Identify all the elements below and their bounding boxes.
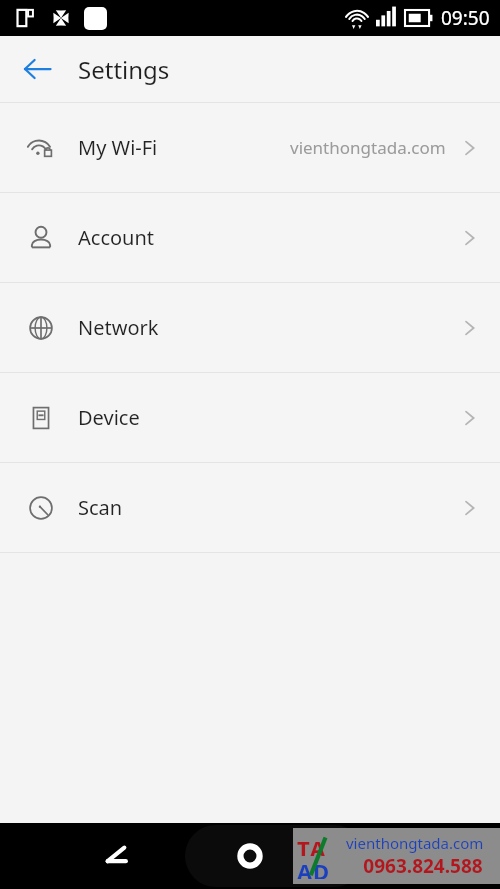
staticText: 09:50 <box>441 5 490 31</box>
staticText: vienthongtada.com <box>290 136 446 159</box>
staticText: T <box>297 833 310 856</box>
button[interactable]: Account <box>0 193 500 282</box>
button[interactable]: Network <box>0 283 500 372</box>
staticText: Account <box>78 224 155 251</box>
button[interactable]: Scan <box>0 463 500 552</box>
staticText: Device <box>78 404 140 431</box>
button[interactable]: Device <box>0 373 500 462</box>
staticText: Network <box>78 314 159 341</box>
button[interactable]: Back <box>88 828 144 884</box>
staticText: Scan <box>78 494 123 521</box>
staticText: A <box>310 833 326 856</box>
button[interactable]: My Wi-Fi <box>0 103 500 192</box>
staticText: Settings <box>78 53 170 86</box>
button[interactable]: Back <box>14 46 60 92</box>
staticText: D <box>313 856 330 879</box>
staticText: 0963.824.588 <box>346 853 500 879</box>
button[interactable]: Home <box>222 828 278 884</box>
staticText: A <box>297 856 313 879</box>
staticText: My Wi-Fi <box>78 134 158 161</box>
staticText: vienthongtada.com <box>346 833 484 853</box>
